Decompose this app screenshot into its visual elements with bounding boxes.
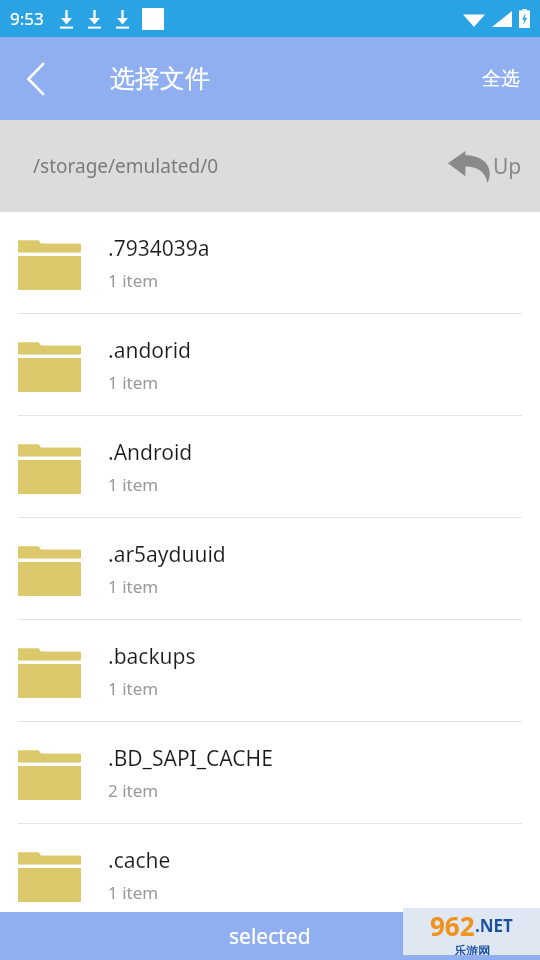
staticText: .cache: [108, 846, 171, 875]
button[interactable]: .Android: [0, 416, 540, 517]
staticText: .andorid: [108, 336, 192, 365]
button[interactable]: 全选: [470, 55, 532, 103]
button[interactable]: Back: [8, 51, 64, 107]
button[interactable]: .cache: [0, 824, 540, 925]
button[interactable]: .7934039a: [0, 212, 540, 313]
button[interactable]: .ar5ayduuid: [0, 518, 540, 619]
staticText: 9:53: [10, 7, 44, 30]
staticText: 1 item: [108, 881, 159, 904]
staticText: 1 item: [108, 677, 159, 700]
staticText: 1 item: [108, 371, 159, 394]
staticText: .Android: [108, 438, 193, 467]
button[interactable]: .andorid: [0, 314, 540, 415]
staticText: 全选: [482, 67, 520, 91]
staticText: .7934039a: [108, 234, 210, 263]
staticText: Up: [493, 152, 522, 181]
staticText: /storage/emulated/0: [33, 153, 219, 179]
staticText: selected: [229, 922, 311, 951]
staticText: .ar5ayduuid: [108, 540, 226, 569]
staticText: 962: [430, 908, 475, 943]
staticText: 1 item: [108, 575, 159, 598]
button[interactable]: selected: [0, 912, 540, 960]
button[interactable]: .backups: [0, 620, 540, 721]
staticText: .backups: [108, 642, 196, 671]
button[interactable]: Up: [443, 141, 526, 191]
button[interactable]: .BD_SAPI_CACHE: [0, 722, 540, 823]
staticText: 选择文件: [110, 63, 210, 94]
staticText: 乐游网: [454, 943, 490, 955]
staticText: 1 item: [108, 473, 159, 496]
staticText: 1 item: [108, 269, 159, 292]
staticText: 2 item: [108, 779, 159, 802]
staticText: .NET: [475, 914, 513, 937]
staticText: .BD_SAPI_CACHE: [108, 744, 273, 773]
